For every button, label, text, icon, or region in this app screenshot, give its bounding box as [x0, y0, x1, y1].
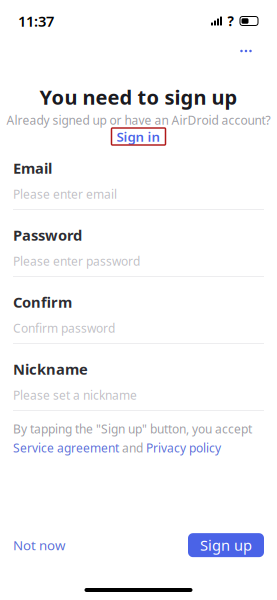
staticText: Nickname: [13, 359, 88, 379]
button[interactable]: Not now: [13, 530, 73, 560]
staticText: Sign in: [116, 128, 160, 145]
staticText: Confirm: [13, 292, 72, 312]
staticText: You need to sign up: [39, 84, 237, 110]
button[interactable]: More options: [229, 40, 263, 62]
staticText: Please enter password: [13, 253, 140, 269]
staticText: ?: [227, 12, 233, 30]
staticText: Not now: [13, 536, 65, 554]
staticText: Already signed up or have an AirDroid ac…: [6, 112, 270, 128]
staticText: and: [122, 440, 143, 456]
staticText: Please set a nickname: [13, 387, 137, 403]
button[interactable]: Privacy policy: [146, 440, 221, 456]
staticText: Confirm password: [13, 320, 115, 336]
button[interactable]: Sign in: [111, 128, 165, 145]
button[interactable]: Service agreement: [13, 440, 119, 456]
button[interactable]: Sign up: [188, 533, 264, 557]
staticText: By tapping the "Sign up" button, you acc…: [13, 421, 252, 437]
staticText: Please enter email: [13, 186, 117, 202]
staticText: Service agreement: [13, 440, 119, 456]
staticText: Email: [13, 158, 52, 178]
staticText: Password: [13, 225, 82, 245]
staticText: Privacy policy: [146, 440, 221, 456]
staticText: Sign up: [200, 535, 252, 555]
staticText: 11:37: [18, 11, 54, 31]
